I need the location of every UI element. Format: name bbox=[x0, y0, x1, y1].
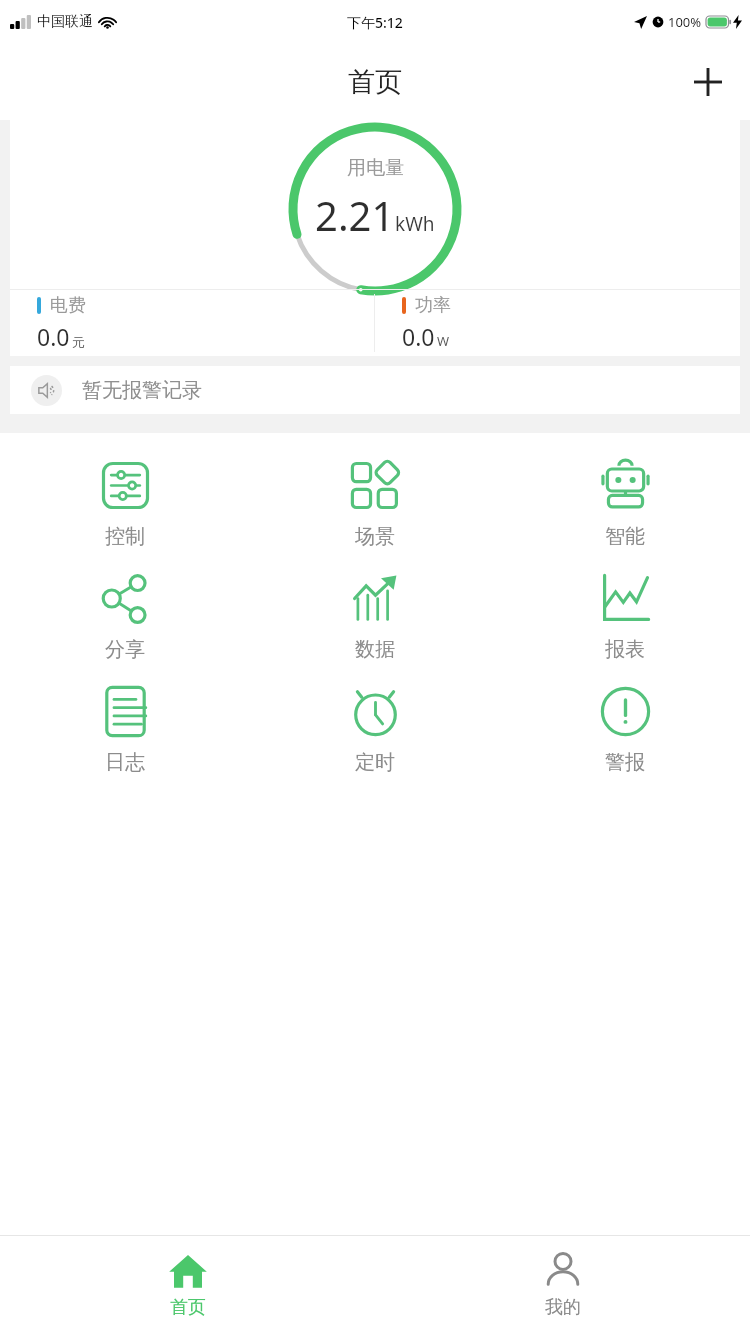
staticText: 报表 bbox=[605, 637, 645, 662]
staticText: 场景 bbox=[355, 524, 395, 549]
button[interactable]: 控制 bbox=[0, 447, 250, 560]
staticText: 控制 bbox=[105, 524, 145, 549]
button[interactable]: 场景 bbox=[250, 447, 500, 560]
button[interactable]: 报表 bbox=[500, 560, 750, 673]
staticText: 中国联通 bbox=[37, 13, 93, 31]
staticText: 警报 bbox=[605, 750, 645, 775]
button[interactable]: 数据 bbox=[250, 560, 500, 673]
staticText: 首页 bbox=[348, 65, 402, 99]
button[interactable]: 警报 bbox=[500, 673, 750, 786]
button[interactable]: 电费 bbox=[10, 290, 374, 356]
staticText: kWh bbox=[395, 211, 435, 237]
staticText: 下午5:12 bbox=[347, 13, 403, 32]
button[interactable]: 功率 bbox=[375, 290, 740, 356]
button[interactable]: 首页 bbox=[0, 1236, 375, 1334]
staticText: 日志 bbox=[105, 750, 145, 775]
staticText: 智能 bbox=[605, 524, 645, 549]
staticText: 电费 bbox=[50, 294, 86, 317]
staticText: 首页 bbox=[170, 1296, 206, 1319]
staticText: 我的 bbox=[545, 1296, 581, 1319]
staticText: 100% bbox=[668, 13, 702, 31]
staticText: 数据 bbox=[355, 637, 395, 662]
staticText: 2.21 bbox=[315, 188, 395, 242]
button[interactable]: 定时 bbox=[250, 673, 500, 786]
button[interactable]: 分享 bbox=[0, 560, 250, 673]
button[interactable]: 暂无报警记录 bbox=[10, 366, 740, 414]
button[interactable]: 我的 bbox=[375, 1236, 750, 1334]
staticText: 元 bbox=[72, 334, 85, 350]
button[interactable]: Add bbox=[680, 54, 736, 110]
staticText: W bbox=[437, 332, 450, 350]
staticText: 定时 bbox=[355, 750, 395, 775]
button[interactable]: 日志 bbox=[0, 673, 250, 786]
staticText: 0.0 bbox=[37, 321, 70, 352]
staticText: 暂无报警记录 bbox=[82, 378, 202, 403]
button[interactable]: 智能 bbox=[500, 447, 750, 560]
staticText: 功率 bbox=[415, 294, 451, 317]
staticText: 用电量 bbox=[347, 156, 404, 180]
staticText: 0.0 bbox=[402, 321, 435, 352]
staticText: 分享 bbox=[105, 637, 145, 662]
